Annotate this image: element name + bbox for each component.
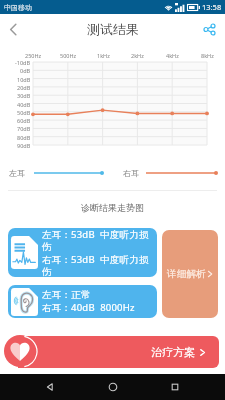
staticText: 13:58	[202, 2, 222, 12]
staticText: 50dB	[17, 109, 31, 116]
staticText: 70dB	[17, 125, 31, 132]
button[interactable]: Back	[1, 17, 25, 41]
staticText: 0dB	[20, 67, 31, 74]
staticText: 右耳	[123, 168, 139, 178]
staticText: 80dB	[17, 134, 31, 141]
staticText: 详细解析	[167, 268, 206, 280]
button[interactable]: Favorite	[4, 335, 36, 367]
staticText: 250Hz	[25, 52, 42, 59]
staticText: 左耳：正常	[42, 289, 91, 301]
button[interactable]: 左耳	[6, 164, 104, 182]
staticText: 右耳：53dB 中度听力损	[42, 253, 149, 266]
staticText: 1kHz	[97, 52, 110, 59]
button[interactable]: 左耳：53dB 中度听力损	[8, 228, 157, 277]
button[interactable]: Recents	[162, 374, 188, 400]
staticText: 4kHz	[166, 52, 179, 59]
button[interactable]: Back	[37, 374, 63, 400]
button[interactable]: 详细解析	[162, 230, 218, 318]
staticText: 中国移动	[4, 3, 32, 12]
staticText: 10dB	[17, 76, 31, 83]
staticText: 测试结果	[87, 21, 139, 37]
button[interactable]: 治疗方案	[18, 336, 219, 368]
staticText: 30dB	[17, 92, 31, 99]
button[interactable]: 左耳：正常	[8, 285, 157, 318]
staticText: 右耳：40dB 8000Hz	[42, 301, 135, 314]
staticText: 治疗方案	[151, 345, 195, 359]
staticText: 90dB	[17, 142, 31, 149]
staticText: 20dB	[17, 84, 31, 91]
staticText: 左耳	[9, 168, 25, 178]
staticText: 伤	[42, 266, 52, 277]
staticText: 诊断结果走势图	[81, 202, 144, 213]
staticText: 60dB	[17, 117, 31, 124]
staticText: 40dB	[17, 101, 31, 108]
staticText: 伤	[42, 241, 52, 253]
button[interactable]: Home	[100, 374, 126, 400]
staticText: 2kHz	[131, 52, 144, 59]
button[interactable]: 右耳	[120, 164, 218, 182]
button[interactable]: Share	[197, 17, 221, 41]
staticText: -10dB	[15, 59, 31, 66]
staticText: 8kHz	[201, 52, 214, 59]
staticText: 500Hz	[60, 52, 77, 59]
staticText: 左耳：53dB 中度听力损	[42, 228, 149, 241]
